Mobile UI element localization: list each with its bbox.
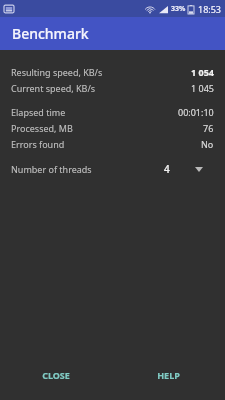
staticText: Number of threads [11,163,92,175]
button[interactable]: CLOSE [28,362,84,388]
staticText: 4 [164,162,170,176]
staticText: Errors found [11,138,65,150]
staticText: 76 [203,122,214,134]
staticText: 1 054 [191,66,214,78]
staticText: 18:53 [198,3,222,15]
staticText: Elapsed time [11,106,66,118]
staticText: Resulting speed, KB/s [11,66,103,78]
button[interactable]: Current speed, KB/s [0,80,225,96]
button[interactable]: Elapsed time [0,104,225,120]
button[interactable]: HELP [143,362,194,388]
button[interactable]: Resulting speed, KB/s [0,64,225,80]
staticText: 1 045 [191,82,214,94]
staticText: Current speed, KB/s [11,82,96,94]
staticText: Benchmark [12,24,89,43]
staticText: No [201,138,214,150]
staticText: 33% [171,4,186,14]
staticText: Processed, MB [11,122,73,134]
button[interactable]: Number of threads [0,160,225,178]
button[interactable]: Processed, MB [0,120,225,136]
button[interactable]: Errors found [0,136,225,152]
staticText: HELP [157,369,180,381]
button[interactable]: Select number of threads [192,162,206,176]
staticText: 00:01:10 [178,106,214,118]
staticText: CLOSE [42,369,70,381]
